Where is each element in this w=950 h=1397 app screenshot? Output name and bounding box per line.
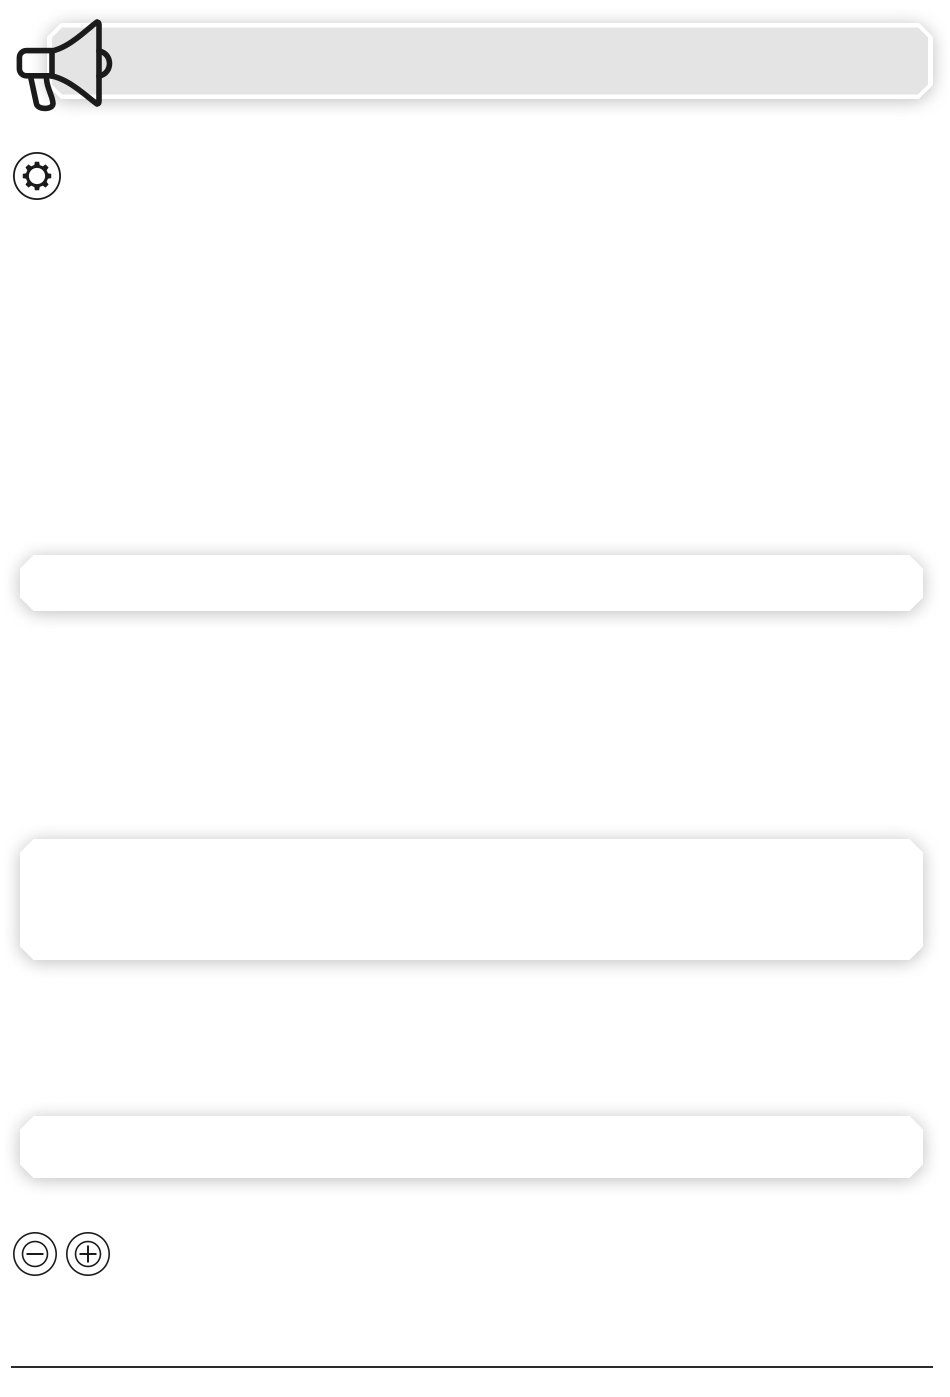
button[interactable]: Decrease <box>13 1232 57 1276</box>
button[interactable] <box>47 23 933 99</box>
button[interactable]: Increase <box>66 1232 110 1276</box>
button[interactable]: Settings <box>13 152 61 200</box>
button[interactable]: Announcements <box>14 16 114 116</box>
